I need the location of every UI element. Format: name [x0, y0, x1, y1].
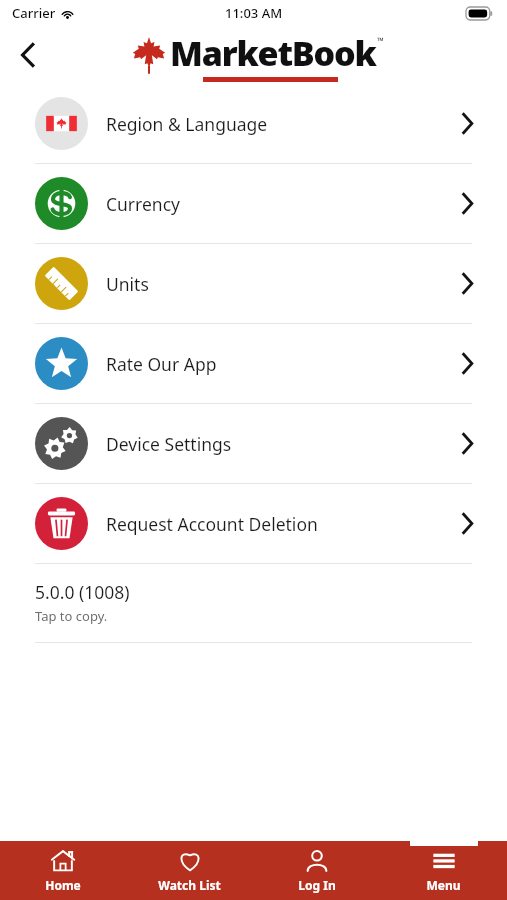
staticText: Menu [426, 877, 461, 893]
button[interactable]: Device Settings [0, 404, 507, 483]
staticText: Tap to copy. [35, 607, 108, 625]
button[interactable]: Currency [0, 164, 507, 243]
button[interactable]: Units [0, 244, 507, 323]
button[interactable]: Rate Our App [0, 324, 507, 403]
staticText: ™ [377, 34, 384, 46]
staticText: Request Account Deletion [106, 512, 461, 536]
staticText: Device Settings [106, 432, 461, 456]
staticText: Carrier [12, 4, 56, 22]
staticText: MarketBook [170, 30, 376, 76]
staticText: Currency [106, 192, 461, 216]
button[interactable]: Log In [253, 841, 380, 900]
staticText: Home [45, 877, 81, 893]
button[interactable]: Menu [380, 841, 507, 900]
staticText: 11:03 AM [225, 4, 283, 22]
staticText: Rate Our App [106, 352, 461, 376]
staticText: Units [106, 272, 461, 296]
staticText: Log In [298, 877, 336, 893]
button[interactable]: Region & Language [0, 84, 507, 163]
button[interactable]: Back [6, 33, 50, 77]
button[interactable]: Home [0, 841, 126, 900]
button[interactable]: 5.0.0 (1008) [0, 564, 507, 642]
staticText: Region & Language [106, 112, 461, 136]
staticText: Watch List [158, 877, 221, 893]
button[interactable]: Request Account Deletion [0, 484, 507, 563]
button[interactable]: Watch List [126, 841, 253, 900]
staticText: 5.0.0 (1008) [35, 580, 130, 604]
